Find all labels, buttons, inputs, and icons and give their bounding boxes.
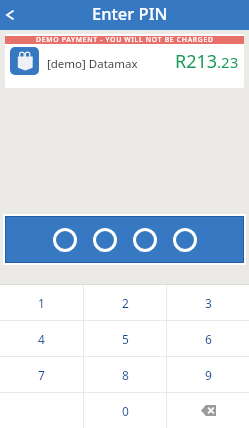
button[interactable]: 7: [0, 357, 83, 392]
button[interactable]: 8: [84, 357, 166, 392]
staticText: DEMO PAYMENT - YOU WILL NOT BE CHARGED: [36, 35, 214, 43]
staticText: 6: [205, 331, 212, 347]
button[interactable]: Back: [0, 3, 24, 27]
staticText: 0: [122, 403, 129, 419]
staticText: 2: [122, 295, 129, 311]
button[interactable]: 5: [84, 321, 166, 356]
staticText: 3: [205, 295, 212, 311]
button[interactable]: [demo] Datamax: [5, 45, 244, 77]
other: Backspace: [201, 405, 216, 416]
staticText: 9: [205, 367, 212, 383]
button[interactable]: 3: [167, 285, 249, 320]
staticText: 4: [38, 331, 45, 347]
button[interactable]: 9: [167, 357, 249, 392]
staticText: 5: [122, 331, 129, 347]
button[interactable]: 4: [0, 321, 83, 356]
staticText: 1: [38, 295, 45, 311]
button[interactable]: 1: [0, 285, 83, 320]
staticText: 8: [122, 367, 129, 383]
button[interactable]: Backspace: [167, 393, 249, 428]
button[interactable]: 0: [84, 393, 166, 428]
staticText: R213.23: [175, 49, 239, 74]
staticText: Enter PIN: [92, 2, 168, 24]
staticText: 7: [38, 367, 45, 383]
button[interactable]: 2: [84, 285, 166, 320]
staticText: [demo] Datamax: [47, 56, 138, 72]
button[interactable]: 6: [167, 321, 249, 356]
